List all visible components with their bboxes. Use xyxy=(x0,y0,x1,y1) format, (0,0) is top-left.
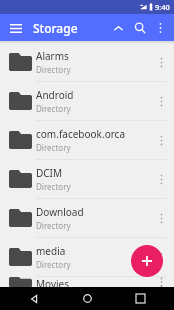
button[interactable]: DCIM xyxy=(0,160,174,198)
button[interactable]: More options for Alarms xyxy=(153,47,169,77)
staticText: media xyxy=(36,244,66,258)
button[interactable]: Home xyxy=(75,287,99,310)
staticText: Directory xyxy=(36,142,71,153)
button[interactable]: media xyxy=(0,238,174,276)
staticText: Download xyxy=(36,205,84,219)
staticText: Storage xyxy=(33,20,78,36)
staticText: Directory xyxy=(36,64,71,75)
staticText: 9:40 xyxy=(155,2,170,12)
button[interactable]: Android xyxy=(0,82,174,120)
staticText: Directory xyxy=(36,181,71,192)
button[interactable]: More options for Android xyxy=(153,86,169,116)
staticText: Directory xyxy=(36,259,71,270)
button[interactable]: Search xyxy=(129,17,151,39)
button[interactable]: More options for Download xyxy=(153,203,169,233)
button[interactable]: Open navigation drawer xyxy=(5,17,27,39)
staticText: com.facebook.orca xyxy=(36,127,126,141)
staticText: Directory xyxy=(36,220,71,231)
button[interactable]: More options for Movies xyxy=(153,277,169,287)
button[interactable]: Movies xyxy=(0,277,174,287)
button[interactable]: Create new xyxy=(131,245,163,277)
button[interactable]: More options for com.facebook.orca xyxy=(153,125,169,155)
staticText: DCIM xyxy=(36,166,63,180)
staticText: Directory xyxy=(36,103,71,114)
button[interactable]: More options xyxy=(151,19,169,37)
button[interactable]: More options for media xyxy=(153,242,169,272)
button[interactable]: Back xyxy=(22,287,46,310)
staticText: Alarms xyxy=(36,49,69,63)
button[interactable]: More options for DCIM xyxy=(153,164,169,194)
button[interactable]: Alarms xyxy=(0,43,174,81)
staticText: Movies xyxy=(36,277,70,287)
button[interactable]: Recent apps xyxy=(128,287,152,310)
button[interactable]: Download xyxy=(0,199,174,237)
staticText: Android xyxy=(36,88,74,102)
button[interactable]: com.facebook.orca xyxy=(0,121,174,159)
button[interactable]: Collapse xyxy=(107,17,129,39)
